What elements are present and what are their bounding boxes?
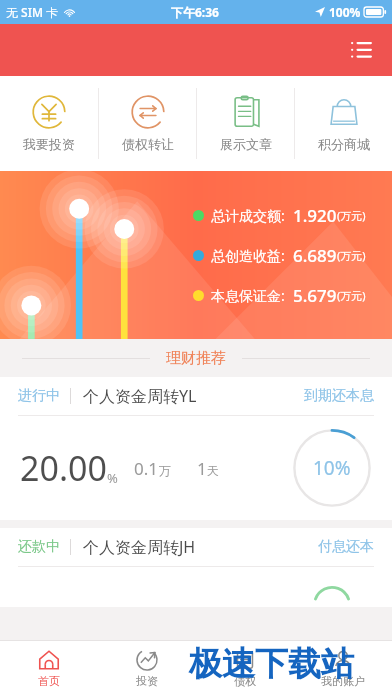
staticText: 进行中	[18, 387, 60, 405]
staticText: 天	[207, 463, 219, 478]
staticText: 总计成交额:	[211, 206, 285, 225]
staticText: 5.679	[293, 284, 337, 307]
staticText: 极速下载站	[189, 643, 354, 685]
button[interactable]: 我的账户	[294, 640, 392, 696]
staticText: 20.00	[20, 445, 107, 491]
staticText: 我要投资	[23, 136, 75, 152]
staticText: 1	[197, 457, 207, 480]
staticText: 10%	[313, 455, 351, 481]
staticText: 我的账户	[321, 674, 365, 688]
staticText: 债权转让	[122, 136, 174, 152]
staticText: 本息保证金:	[211, 286, 285, 305]
staticText: 积分商城	[318, 136, 370, 152]
button[interactable]: 还款中	[0, 528, 392, 607]
button[interactable]: 积分商城	[295, 76, 392, 171]
staticText: (万元)	[337, 208, 366, 223]
staticText: 总创造收益:	[211, 246, 285, 265]
staticText: 还款中	[18, 538, 60, 556]
staticText: %	[107, 469, 118, 487]
button[interactable]: 债权	[196, 640, 294, 696]
staticText: (万元)	[337, 288, 366, 303]
staticText: 100%	[329, 4, 361, 20]
staticText: 万	[159, 463, 171, 478]
staticText: 理财推荐	[166, 349, 226, 368]
button[interactable]: 首页	[0, 640, 98, 696]
button[interactable]: 债权转让	[99, 76, 196, 171]
staticText: 0.1	[134, 457, 159, 480]
staticText: 投资	[136, 674, 158, 688]
staticText: 下午6:36	[171, 4, 219, 20]
staticText: 付息还本	[318, 538, 374, 556]
staticText: 展示文章	[220, 136, 272, 152]
button[interactable]: 我要投资	[0, 76, 98, 171]
staticText: 1.920	[293, 204, 337, 227]
staticText: 首页	[38, 674, 60, 688]
staticText: 个人资金周转JH	[83, 536, 196, 558]
staticText: 债权	[234, 674, 256, 688]
staticText: 6.689	[293, 244, 337, 267]
button[interactable]: 展示文章	[197, 76, 294, 171]
staticText: (万元)	[337, 248, 366, 263]
staticText: 无 SIM 卡	[6, 4, 59, 20]
staticText: 个人资金周转YL	[83, 385, 197, 407]
button[interactable]: 投资	[98, 640, 196, 696]
staticText: 到期还本息	[304, 387, 374, 405]
button[interactable]: 进行中	[0, 377, 392, 520]
button[interactable]: Menu	[344, 33, 378, 67]
